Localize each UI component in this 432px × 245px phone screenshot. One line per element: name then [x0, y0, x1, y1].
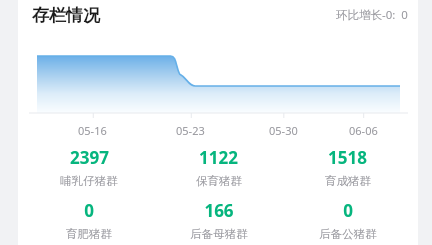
staticText: 后备母猪群	[190, 227, 248, 241]
staticText: 后备公猪群	[319, 227, 377, 241]
staticText: 1518	[328, 146, 367, 169]
button[interactable]: 0	[283, 199, 412, 241]
staticText: 环比增长-0: 0	[336, 7, 408, 23]
button[interactable]: 存栏情况	[18, 0, 418, 245]
button[interactable]: 2397	[24, 146, 154, 188]
staticText: 哺乳仔猪群	[60, 174, 118, 188]
button[interactable]: 1518	[283, 146, 412, 188]
staticText: 育成猪群	[325, 174, 371, 188]
staticText: 育肥猪群	[66, 227, 112, 241]
staticText: 2397	[70, 146, 109, 169]
staticText: 166	[204, 199, 234, 222]
staticText: 存栏情况	[32, 5, 100, 26]
button[interactable]: 1122	[154, 146, 283, 188]
button[interactable]: 166	[154, 199, 283, 241]
staticText: 1122	[199, 146, 238, 169]
button[interactable]: 0	[24, 199, 154, 241]
staticText: 05-30	[269, 123, 298, 138]
staticText: 保育猪群	[196, 174, 242, 188]
staticText: 05-16	[78, 123, 107, 138]
staticText: 0	[84, 199, 94, 222]
staticText: 05-23	[176, 123, 205, 138]
staticText: 0	[343, 199, 353, 222]
staticText: 06-06	[349, 123, 378, 138]
